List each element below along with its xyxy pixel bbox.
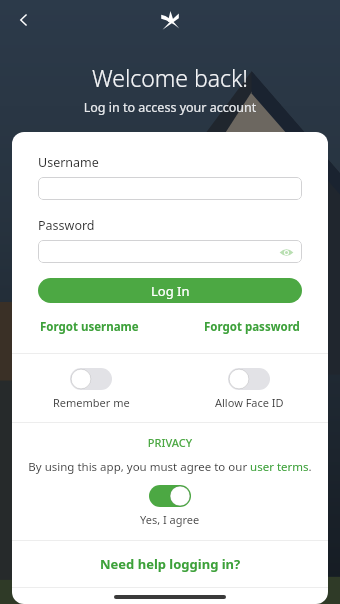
- staticText: PRIVACY: [12, 435, 328, 450]
- button[interactable]: Show password: [38, 240, 302, 263]
- button[interactable]: Forgot password: [202, 317, 302, 337]
- staticText: Remember me: [53, 395, 130, 410]
- button[interactable]: Log In: [38, 278, 302, 303]
- staticText: Yes, I agree: [140, 512, 200, 527]
- button[interactable]: By using this app, you must agree to our…: [24, 459, 316, 475]
- button[interactable]: Remember me: [12, 366, 170, 412]
- button[interactable]: Show password: [277, 243, 295, 261]
- staticText: Log In: [151, 282, 190, 300]
- staticText: Need help logging in?: [100, 555, 241, 573]
- button[interactable]: Need help logging in?: [12, 541, 328, 587]
- staticText: Allow Face ID: [215, 395, 284, 410]
- staticText: Forgot password: [204, 319, 300, 335]
- button[interactable]: [38, 177, 302, 200]
- button[interactable]: Forgot username: [38, 317, 141, 337]
- staticText: Log in to access your account: [0, 99, 340, 116]
- staticText: Forgot username: [40, 319, 139, 335]
- staticText: Welcome back!: [0, 62, 340, 93]
- button[interactable]: Back: [6, 2, 42, 38]
- button[interactable]: Allow Face ID: [170, 366, 328, 412]
- staticText: Username: [38, 154, 99, 171]
- staticText: Password: [38, 217, 95, 234]
